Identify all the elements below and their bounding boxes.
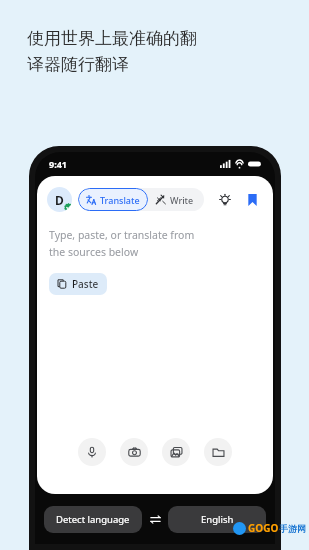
button[interactable]: Account [47,187,72,212]
staticText: D [55,192,64,208]
staticText: 9:41 [49,158,67,170]
button[interactable]: English [168,506,266,533]
staticText: Write [170,194,194,206]
staticText: 手游网 [279,523,306,534]
button[interactable]: Camera [120,438,148,466]
staticText: Paste [72,277,99,291]
staticText: Type, paste, or translate from the sourc… [49,228,195,259]
staticText: Detect language [56,513,130,526]
button[interactable]: Voice [78,438,106,466]
button[interactable]: Files [204,438,232,466]
staticText: GOGO [248,521,279,535]
button[interactable]: Saved [241,189,263,211]
button[interactable]: Tips [214,189,236,211]
button[interactable]: Paste [49,273,107,295]
staticText: 使用世界上最准确的翻 译器随行翻译 [27,28,197,75]
button[interactable]: Translate [78,188,148,211]
button[interactable]: Write [148,188,204,211]
staticText: English [201,513,234,526]
button[interactable]: Swap languages [142,506,168,533]
button[interactable]: Detect language [44,506,142,533]
button[interactable]: Photos [162,438,190,466]
staticText: Translate [100,194,140,206]
